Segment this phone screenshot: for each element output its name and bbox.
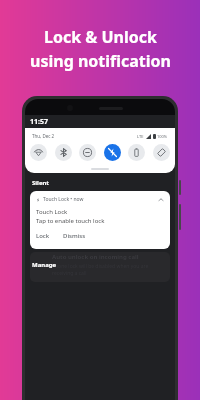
button[interactable]: Collapse	[158, 197, 164, 203]
staticText: Dismiss	[63, 232, 86, 240]
staticText: LTE	[137, 134, 144, 139]
button[interactable]: Touch Lock • now	[30, 191, 170, 249]
button[interactable]: Wi-Fi	[30, 144, 47, 161]
staticText: Lock	[36, 232, 50, 240]
button[interactable]: Battery Saver	[128, 144, 145, 161]
staticText: Touch Lock	[36, 208, 68, 216]
staticText: Phone lock will be disabled when you are	[52, 263, 149, 270]
staticText: 100%	[157, 134, 168, 139]
button[interactable]: Auto rotate	[153, 144, 170, 161]
staticText: 11:57	[30, 117, 48, 127]
button[interactable]: Bluetooth	[55, 144, 72, 161]
staticText: Manage	[32, 261, 57, 269]
staticText: Tap to enable touch lock	[36, 217, 105, 225]
button[interactable]: Do Not Disturb	[79, 144, 96, 161]
button[interactable]: Dismiss	[63, 232, 86, 240]
staticText: Touch Lock • now	[43, 196, 84, 203]
staticText: Auto unlock on incoming call	[52, 253, 139, 261]
staticText: Lock & Unlock	[44, 26, 157, 48]
staticText: using notification	[30, 50, 171, 72]
button[interactable]: Flashlight	[104, 144, 121, 161]
staticText: Thu, Dec 2	[32, 133, 55, 139]
staticText: Silent	[32, 179, 49, 187]
button[interactable]: Lock	[36, 232, 50, 240]
